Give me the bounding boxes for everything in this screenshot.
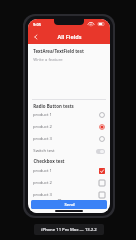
- staticText: product 2: [33, 180, 52, 186]
- button[interactable]: product 1: [33, 109, 105, 121]
- button[interactable]: Back: [28, 30, 44, 44]
- staticText: All Fields: [57, 33, 82, 41]
- button[interactable]: product 3: [33, 133, 105, 145]
- staticText: product 1: [33, 112, 52, 118]
- staticText: Send: [64, 202, 75, 208]
- staticText: product 3: [33, 136, 52, 142]
- staticText: Write a feature: [33, 57, 63, 63]
- button[interactable]: product 2: [33, 177, 105, 189]
- button[interactable]: Send: [31, 200, 107, 209]
- button[interactable]: product 3: [33, 189, 105, 200]
- button[interactable]: product 2: [33, 121, 105, 133]
- button[interactable]: Write a feature: [33, 57, 105, 99]
- staticText: product 1: [33, 168, 52, 174]
- button[interactable]: Switch test: [33, 145, 105, 157]
- staticText: 9:05: [33, 22, 41, 27]
- staticText: product 3: [33, 192, 52, 198]
- staticText: Checkbox test: [33, 158, 65, 164]
- staticText: TextArea/TextField test: [33, 48, 84, 54]
- staticText: product 2: [33, 124, 52, 130]
- button[interactable]: product 1: [33, 165, 105, 177]
- staticText: iPhone 11 Pro Max — 13.2.2: [41, 227, 97, 233]
- staticText: Switch test: [33, 148, 55, 154]
- staticText: Radio Button tests: [33, 103, 74, 109]
